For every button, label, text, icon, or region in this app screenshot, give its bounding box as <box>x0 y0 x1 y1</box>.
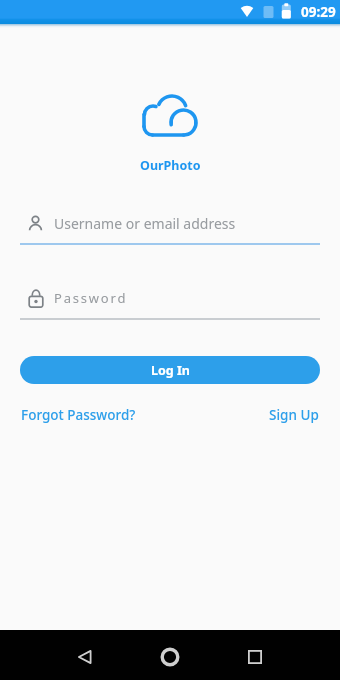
button[interactable]: Log In <box>20 356 320 384</box>
staticText: 09:29 <box>301 3 336 21</box>
staticText: Username or email address <box>54 214 236 233</box>
button[interactable]: Forgot Password? <box>21 406 136 424</box>
button[interactable]: Password <box>20 288 320 308</box>
button[interactable] <box>227 630 283 680</box>
button[interactable] <box>142 630 198 680</box>
staticText: Log In <box>151 362 190 379</box>
staticText: OurPhoto <box>140 157 201 174</box>
button[interactable]: Sign Up <box>269 406 319 424</box>
button[interactable] <box>57 630 113 680</box>
button[interactable]: Username or email address <box>20 213 320 233</box>
staticText: Password <box>54 289 128 307</box>
